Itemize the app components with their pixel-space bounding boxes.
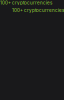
staticText: 100+ cryptocurrencies [12,7,64,13]
staticText: 100+ cryptocurrencies [0,0,52,5]
